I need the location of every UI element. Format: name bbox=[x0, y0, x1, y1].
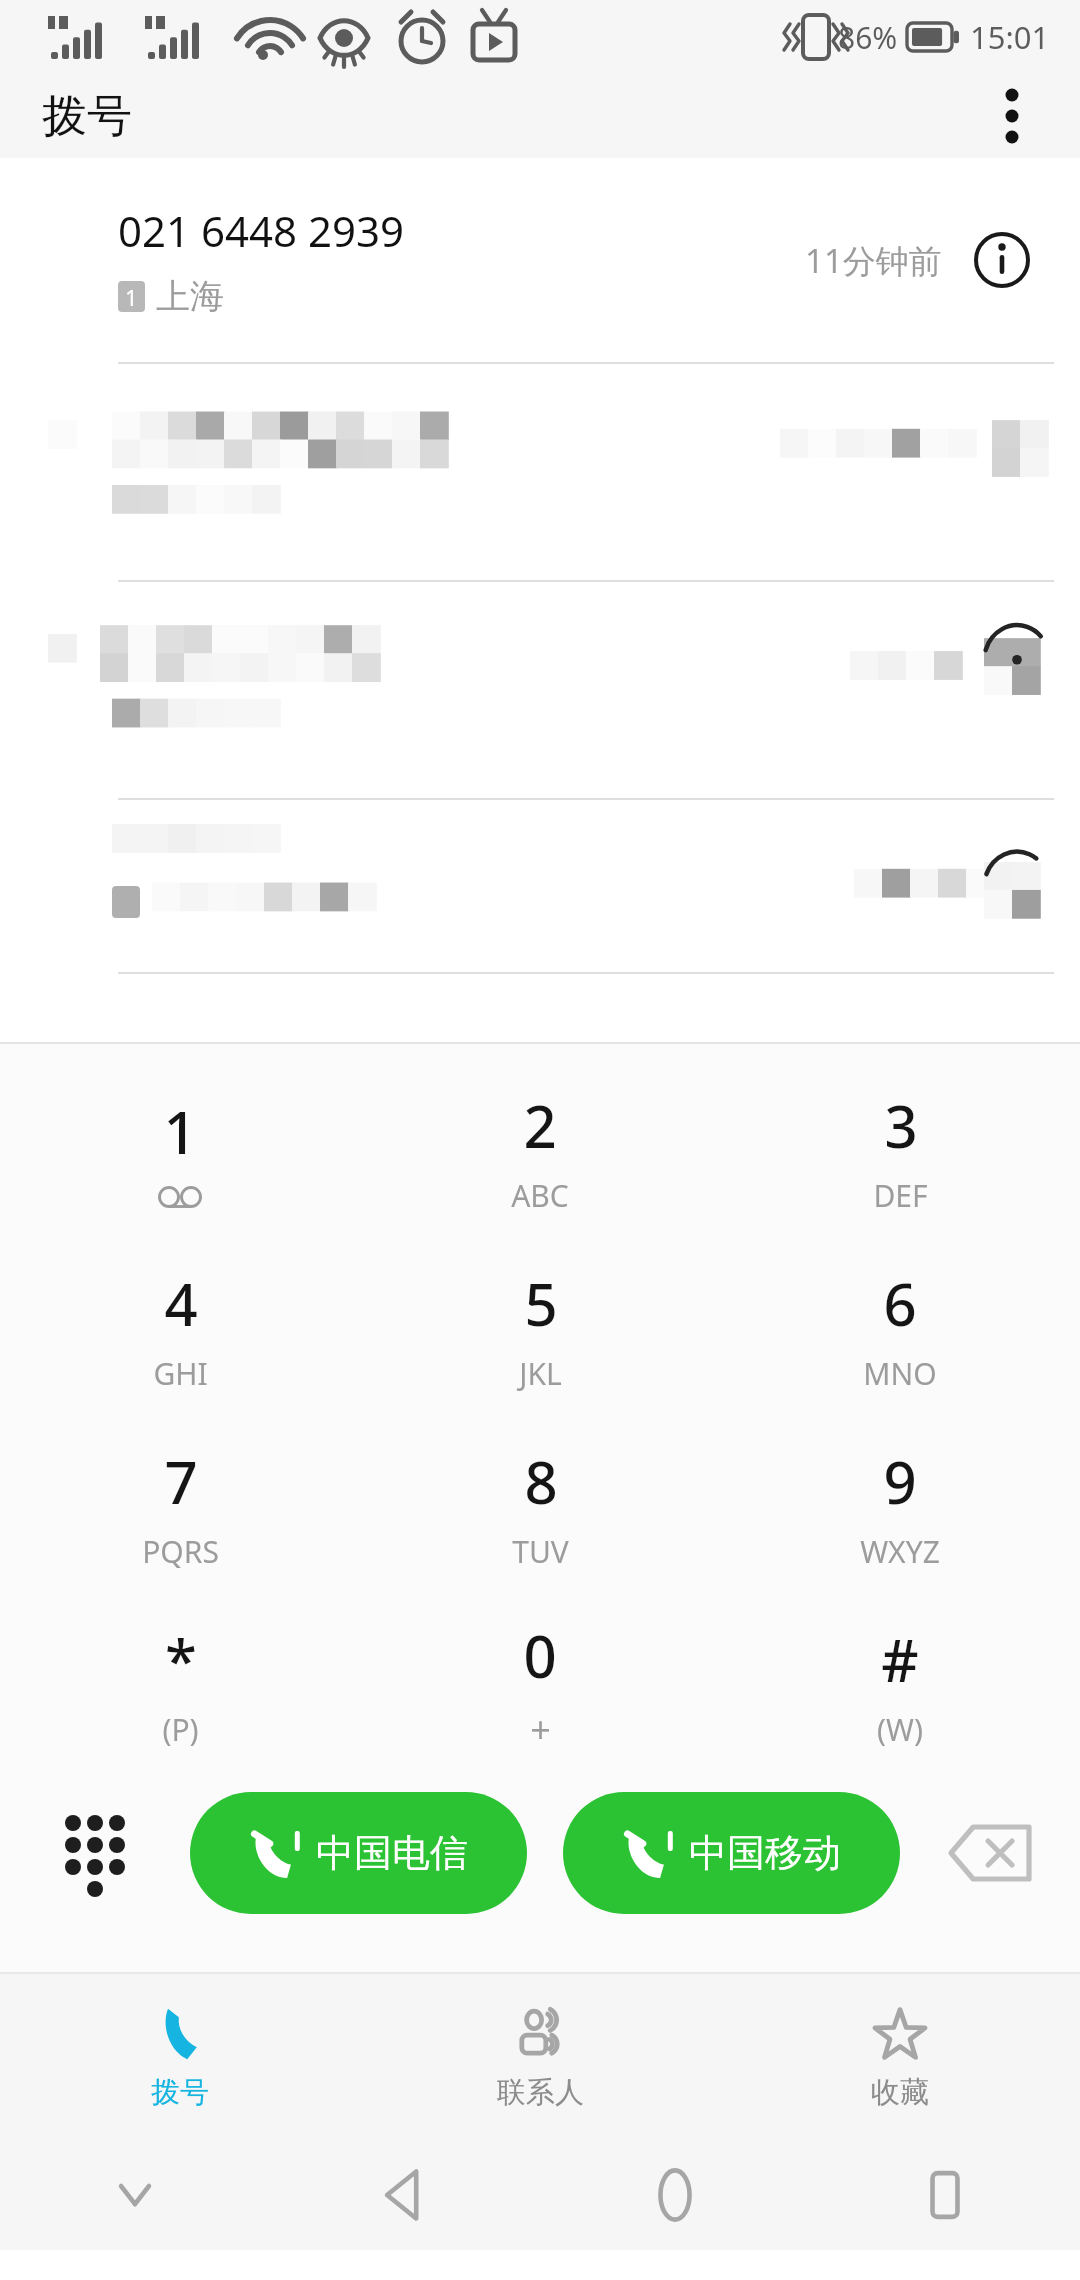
staticText: JKL bbox=[519, 1353, 562, 1394]
button[interactable]: More options bbox=[970, 74, 1054, 158]
staticText: 7 bbox=[164, 1442, 198, 1521]
staticText: GHI bbox=[153, 1353, 208, 1394]
staticText: TUV bbox=[512, 1531, 569, 1572]
staticText: 15:01 bbox=[970, 16, 1050, 58]
button[interactable]: 7 bbox=[0, 1418, 360, 1596]
staticText: 0 bbox=[523, 1616, 557, 1695]
staticText: PQRS bbox=[142, 1531, 219, 1572]
staticText: (P) bbox=[162, 1709, 199, 1750]
staticText: DEF bbox=[873, 1175, 928, 1216]
staticText: 11分钟前 bbox=[805, 238, 942, 283]
button[interactable]: Hide dialpad bbox=[0, 1778, 190, 1928]
button[interactable]: Call details bbox=[968, 226, 1036, 294]
button[interactable]: 拨号 bbox=[0, 1974, 360, 2140]
staticText: 中国电信 bbox=[316, 1829, 468, 1877]
button[interactable]: 中国电信 bbox=[190, 1792, 527, 1914]
staticText: # bbox=[881, 1620, 919, 1699]
staticText: 1 bbox=[163, 1092, 197, 1171]
button[interactable]: 0 bbox=[360, 1596, 720, 1774]
staticText: 收藏 bbox=[871, 2074, 929, 2111]
button[interactable]: 4 bbox=[0, 1240, 360, 1418]
staticText: 8 bbox=[524, 1442, 558, 1521]
staticText: 3 bbox=[884, 1086, 918, 1165]
button[interactable]: Recent apps bbox=[810, 2140, 1080, 2250]
staticText: WXYZ bbox=[860, 1531, 940, 1572]
staticText: 9 bbox=[883, 1442, 917, 1521]
button[interactable]: 021 6448 2939 bbox=[0, 158, 1080, 362]
button[interactable] bbox=[0, 364, 1080, 580]
staticText: 上海 bbox=[156, 275, 224, 318]
button[interactable]: 9 bbox=[720, 1418, 1080, 1596]
staticText: 中国移动 bbox=[689, 1829, 841, 1877]
button[interactable]: * bbox=[0, 1596, 360, 1774]
button[interactable]: 2 bbox=[360, 1062, 720, 1240]
staticText: 4 bbox=[164, 1264, 198, 1343]
staticText: 1 bbox=[125, 282, 138, 312]
staticText: 6 bbox=[883, 1264, 917, 1343]
staticText: 拨号 bbox=[42, 88, 132, 145]
button[interactable]: 收藏 bbox=[720, 1974, 1080, 2140]
staticText: 5 bbox=[524, 1264, 558, 1343]
button[interactable]: 1 bbox=[0, 1062, 360, 1240]
staticText: 联系人 bbox=[497, 2074, 584, 2111]
button[interactable] bbox=[0, 582, 1080, 798]
button[interactable]: 5 bbox=[360, 1240, 720, 1418]
button[interactable]: 8 bbox=[360, 1418, 720, 1596]
staticText: 021 6448 2939 bbox=[118, 202, 405, 259]
staticText: 86% bbox=[838, 17, 898, 58]
staticText: * bbox=[165, 1620, 197, 1699]
staticText: MNO bbox=[863, 1353, 937, 1394]
button[interactable]: Back bbox=[270, 2140, 540, 2250]
button[interactable]: 联系人 bbox=[360, 1974, 720, 2140]
staticText: 拨号 bbox=[151, 2074, 209, 2111]
button[interactable]: 6 bbox=[720, 1240, 1080, 1418]
staticText: ABC bbox=[511, 1175, 569, 1216]
button[interactable]: Backspace bbox=[900, 1778, 1080, 1928]
button[interactable]: Home bbox=[540, 2140, 810, 2250]
button[interactable]: 中国移动 bbox=[563, 1792, 900, 1914]
staticText: (W) bbox=[877, 1709, 923, 1750]
button[interactable]: # bbox=[720, 1596, 1080, 1774]
button[interactable] bbox=[0, 800, 1080, 972]
staticText: 2 bbox=[523, 1086, 557, 1165]
button[interactable]: Hide keyboard bbox=[0, 2140, 270, 2250]
button[interactable]: 3 bbox=[720, 1062, 1080, 1240]
staticText: + bbox=[530, 1705, 551, 1754]
